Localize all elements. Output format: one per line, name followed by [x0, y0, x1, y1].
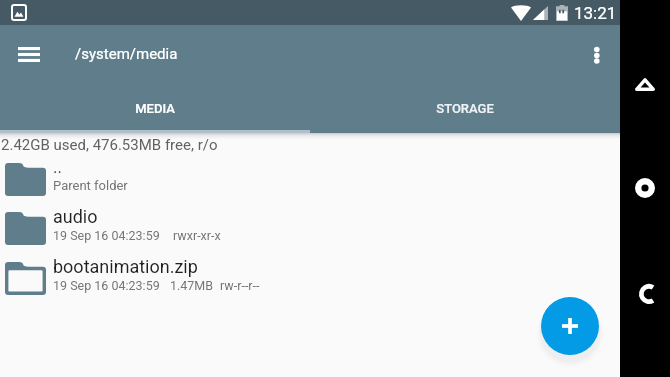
button[interactable]: Open navigation drawer: [5, 30, 53, 70]
staticText: 19 Sep 16 04:23:59: [53, 228, 160, 243]
staticText: rw-r--r--: [220, 278, 260, 293]
staticText: 2.42GB used, 476.53MB free, r/o: [1, 136, 218, 154]
staticText: rwxr-xr-x: [173, 228, 221, 243]
button[interactable]: Back: [625, 64, 665, 104]
button[interactable]: MEDIA: [0, 75, 310, 133]
staticText: bootanimation.zip: [53, 256, 198, 277]
button[interactable]: More options: [572, 29, 620, 71]
staticText: audio: [53, 206, 98, 227]
staticText: /system/media: [75, 45, 178, 63]
staticText: 19 Sep 16 04:23:59: [53, 278, 160, 293]
button[interactable]: bootanimation.zip: [0, 262, 620, 311]
button[interactable]: audio: [0, 212, 620, 261]
button[interactable]: Recent apps: [625, 273, 665, 313]
button[interactable]: STORAGE: [310, 75, 620, 133]
staticText: 1.47MB: [170, 278, 214, 293]
button[interactable]: ..: [0, 163, 620, 212]
button[interactable]: Home: [625, 168, 665, 208]
staticText: MEDIA: [135, 101, 175, 116]
staticText: ..: [53, 157, 62, 177]
staticText: Parent folder: [53, 178, 128, 193]
button[interactable]: Add: [541, 297, 599, 355]
staticText: STORAGE: [436, 101, 494, 116]
staticText: 13:21: [574, 3, 617, 23]
